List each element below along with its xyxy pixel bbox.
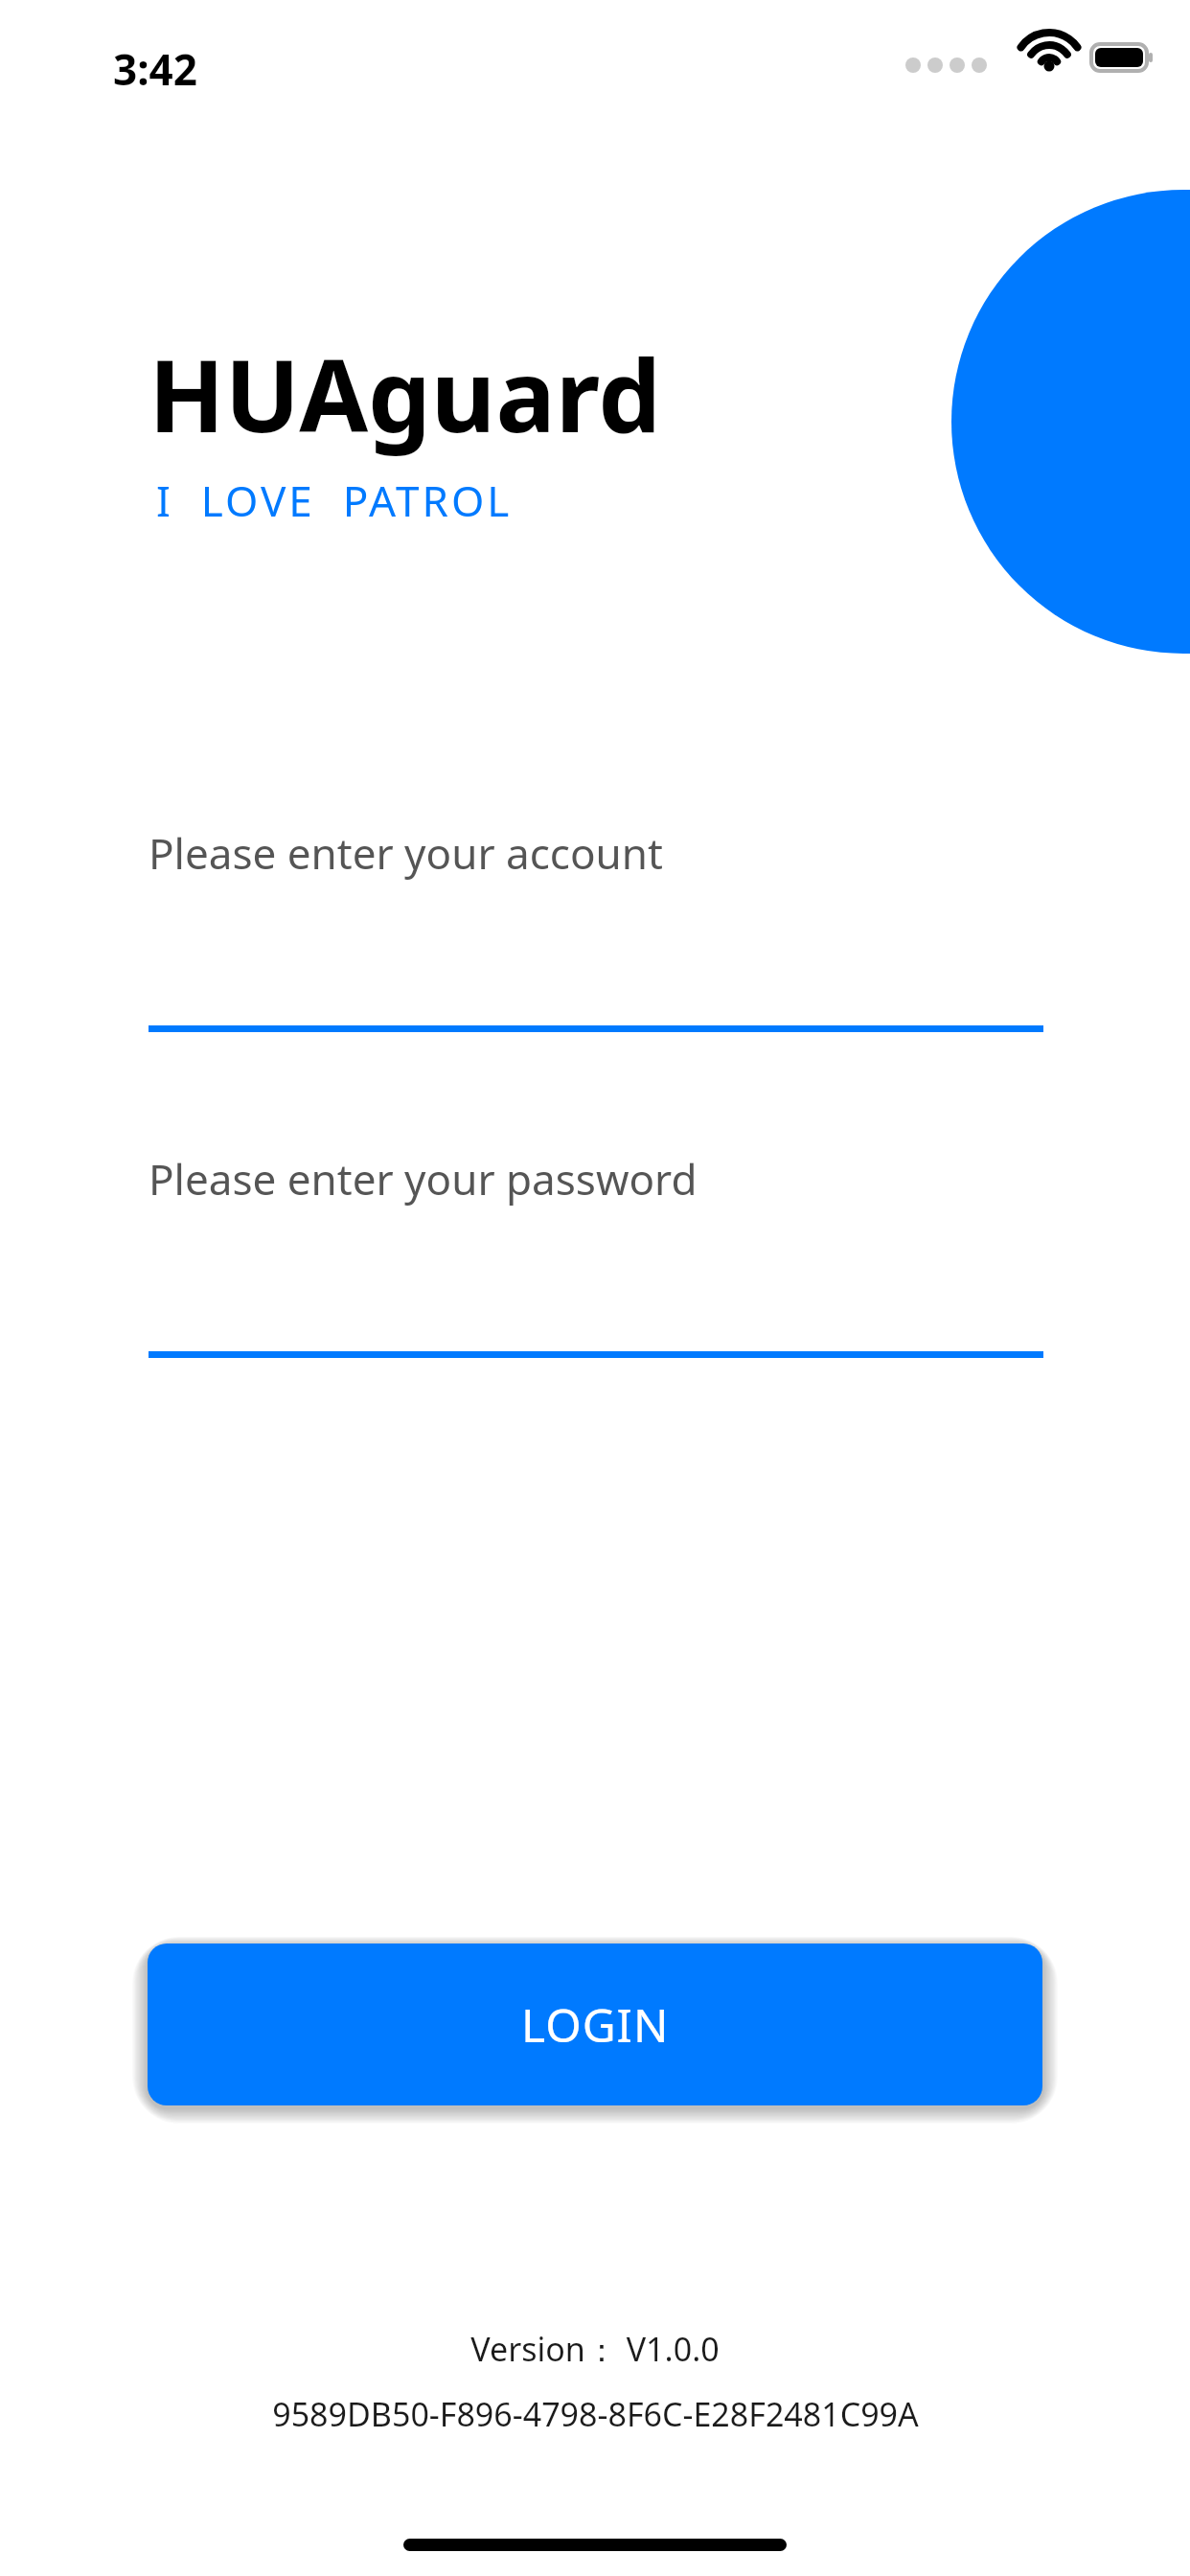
button[interactable]: Please enter your account bbox=[149, 824, 1043, 1032]
staticText: 3:42 bbox=[113, 40, 197, 98]
staticText: 9589DB50-F896-4798-8F6C-E28F2481C99A bbox=[272, 2392, 919, 2436]
button[interactable]: LOGIN bbox=[148, 1943, 1042, 2105]
staticText: Please enter your password bbox=[149, 1150, 698, 1207]
staticText: Version： V1.0.0 bbox=[470, 2327, 720, 2371]
staticText: HUAguard bbox=[149, 326, 661, 462]
button[interactable]: Please enter your password bbox=[149, 1150, 1043, 1358]
staticText: I LOVE PATROL bbox=[156, 471, 513, 529]
staticText: Please enter your account bbox=[149, 824, 663, 882]
staticText: LOGIN bbox=[521, 1993, 670, 2056]
